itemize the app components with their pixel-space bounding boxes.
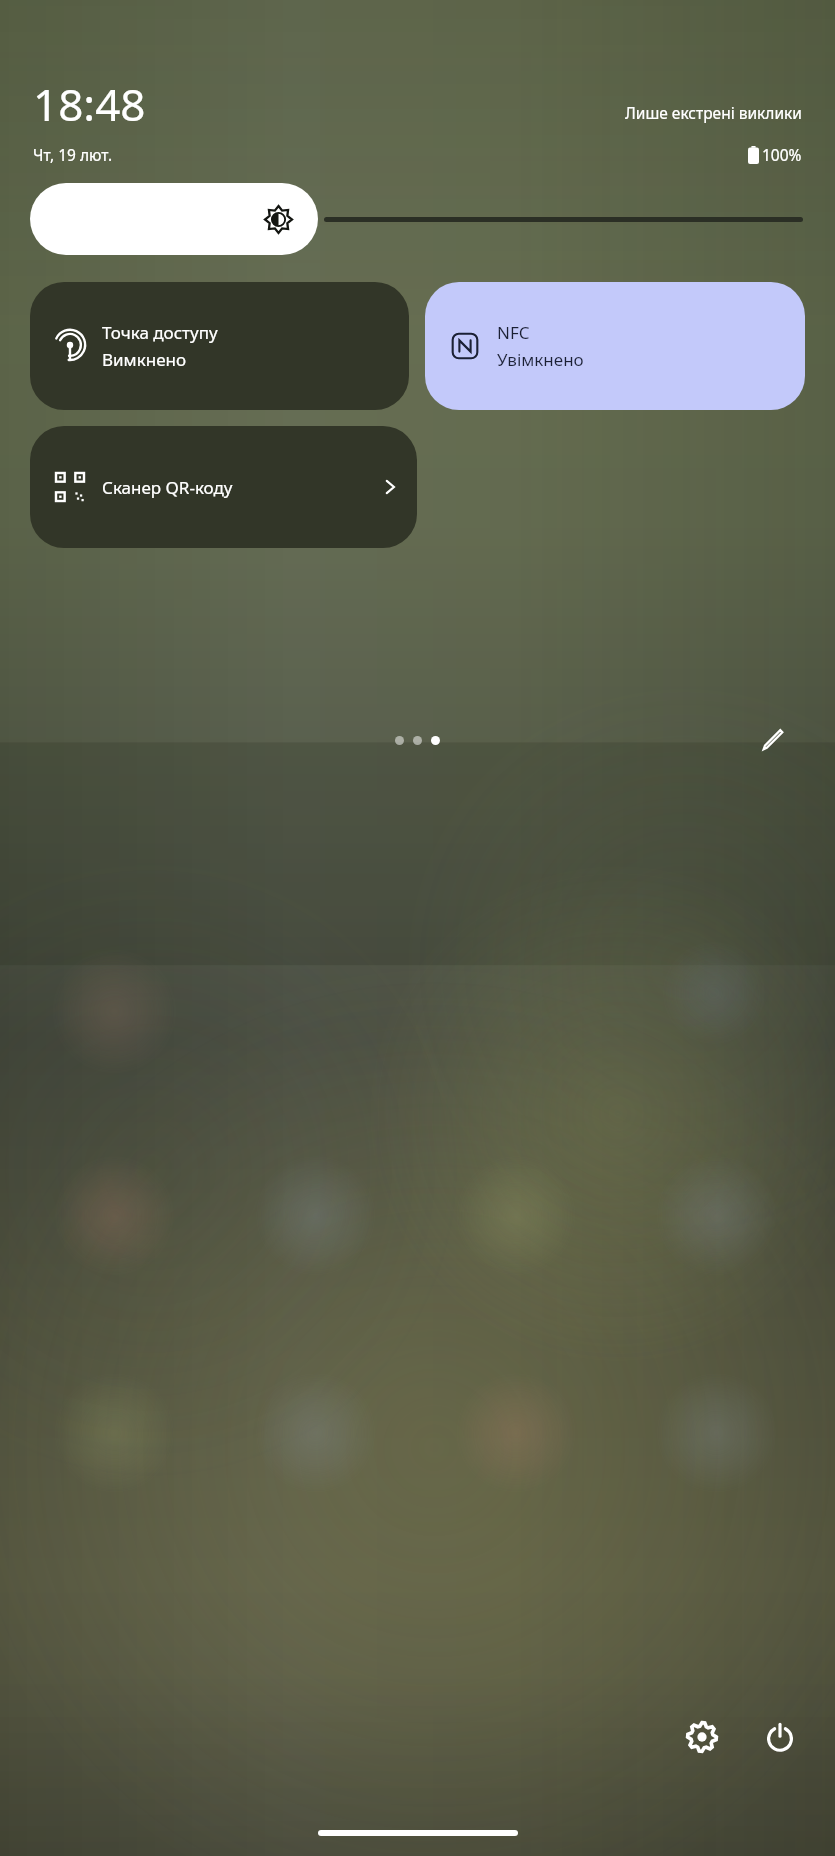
button[interactable]: Power (757, 1714, 803, 1760)
staticText: NFC (497, 321, 530, 344)
staticText: Лише екстрені виклики (625, 102, 802, 123)
staticText: 100% (762, 144, 802, 165)
staticText: Чт, 19 лют. (33, 144, 113, 165)
button[interactable]: Точка доступу (30, 282, 409, 410)
button[interactable]: NFC (425, 282, 805, 410)
staticText: 18:48 (33, 74, 146, 134)
button[interactable] (30, 183, 805, 255)
button[interactable]: Settings (679, 1714, 725, 1760)
staticText: Точка доступу (102, 321, 218, 344)
staticText: Вимкнено (102, 348, 187, 371)
staticText: Сканер QR-коду (102, 476, 233, 499)
staticText: Увімкнено (497, 348, 584, 371)
button[interactable]: Edit tiles (751, 718, 795, 762)
button[interactable]: Сканер QR-коду (30, 426, 417, 548)
